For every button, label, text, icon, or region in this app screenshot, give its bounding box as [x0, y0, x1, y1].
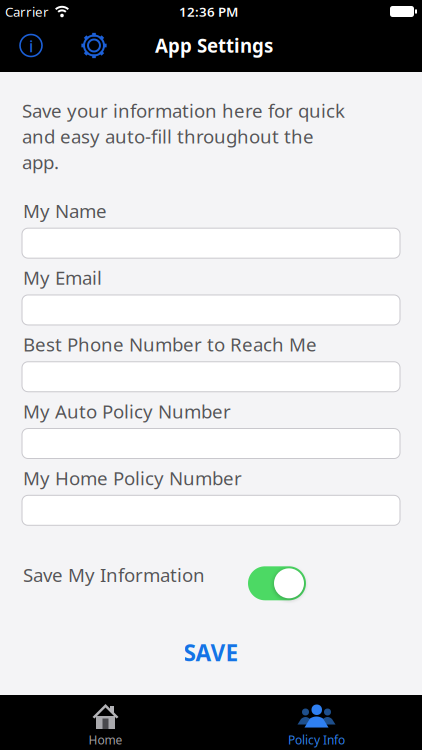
staticText: My Email: [23, 265, 102, 290]
staticText: i: [29, 35, 33, 57]
button[interactable]: SAVE: [175, 634, 246, 670]
staticText: Save My Information: [23, 562, 205, 587]
staticText: SAVE: [183, 637, 238, 667]
staticText: App Settings: [155, 33, 273, 58]
staticText: app.: [22, 150, 59, 174]
button[interactable]: Info: [19, 33, 43, 57]
button[interactable]: My Name: [22, 228, 400, 258]
button[interactable]: My Email: [22, 295, 400, 325]
staticText: Carrier: [5, 3, 49, 20]
staticText: Home: [88, 732, 122, 748]
staticText: My Name: [23, 198, 107, 223]
button[interactable]: Home: [0, 695, 211, 750]
staticText: and easy auto-fill throughout the: [22, 124, 314, 149]
button[interactable]: Settings: [80, 31, 108, 59]
button[interactable]: My Auto Policy Number: [22, 428, 400, 458]
staticText: 12:36 PM: [179, 3, 238, 20]
staticText: Save your information here for quick: [22, 98, 345, 123]
staticText: My Auto Policy Number: [23, 399, 231, 423]
button[interactable]: Policy Info: [211, 695, 422, 750]
button[interactable]: My Home Policy Number: [22, 495, 400, 525]
staticText: My Home Policy Number: [23, 465, 242, 490]
staticText: Policy Info: [288, 732, 345, 748]
button[interactable]: Best Phone Number to Reach Me: [22, 362, 400, 392]
button[interactable]: Save My Information: [248, 566, 306, 600]
staticText: Best Phone Number to Reach Me: [23, 332, 317, 357]
